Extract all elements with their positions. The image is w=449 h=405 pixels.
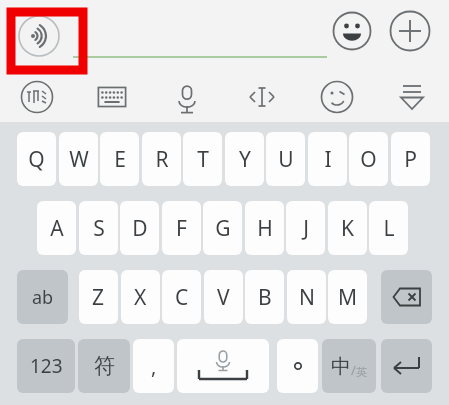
button[interactable]: Enter — [381, 339, 432, 393]
staticText: A — [50, 214, 64, 243]
staticText: 符 — [94, 353, 115, 379]
button[interactable]: Stickers — [299, 72, 374, 122]
button[interactable]: 符 — [78, 339, 130, 393]
button[interactable]: O — [349, 132, 388, 186]
staticText: G — [215, 214, 231, 243]
button[interactable]: C — [162, 270, 201, 324]
staticText: K — [341, 214, 354, 243]
button[interactable]: , — [133, 339, 174, 393]
staticText: C — [175, 283, 189, 312]
staticText: J — [303, 214, 309, 243]
button[interactable]: E — [100, 132, 139, 186]
button[interactable]: Chinese English toggle — [322, 339, 376, 393]
staticText: X — [134, 283, 147, 312]
button[interactable]: Voice — [149, 72, 224, 122]
staticText: F — [176, 214, 187, 243]
staticText: I — [324, 145, 332, 174]
button[interactable]: Emoji — [332, 11, 372, 51]
staticText: H — [257, 214, 273, 243]
staticText: M — [338, 283, 358, 312]
button[interactable]: R — [142, 132, 181, 186]
button[interactable]: Keyboard — [74, 72, 149, 122]
staticText: B — [258, 283, 272, 312]
staticText: P — [404, 145, 417, 174]
staticText: Q — [28, 145, 45, 174]
staticText: L — [383, 214, 395, 243]
staticText: U — [278, 145, 294, 174]
button[interactable]: Period — [277, 339, 318, 393]
button[interactable]: U — [266, 132, 305, 186]
staticText: / — [351, 361, 356, 379]
staticText: Z — [92, 283, 105, 312]
button[interactable]: S — [79, 201, 118, 255]
button[interactable]: T — [183, 132, 222, 186]
button[interactable]: A — [37, 201, 76, 255]
button[interactable]: B — [245, 270, 284, 324]
button[interactable]: J — [286, 201, 325, 255]
button[interactable]: Voice input — [18, 15, 60, 57]
button[interactable]: Y — [225, 132, 264, 186]
staticText: E — [114, 145, 126, 174]
staticText: W — [69, 145, 89, 174]
button[interactable]: Backspace — [381, 270, 432, 324]
staticText: D — [132, 214, 148, 243]
staticText: S — [93, 214, 105, 243]
staticText: T — [197, 145, 209, 174]
staticText: 英 — [356, 365, 367, 379]
staticText: ab — [32, 285, 54, 310]
button[interactable]: H — [245, 201, 284, 255]
staticText: V — [217, 283, 230, 312]
button[interactable]: L — [369, 201, 408, 255]
staticText: O — [360, 145, 377, 174]
button[interactable]: Z — [79, 270, 118, 324]
staticText: Y — [239, 145, 251, 174]
button[interactable]: ab — [17, 270, 68, 324]
staticText: R — [155, 145, 169, 174]
button[interactable]: 123 — [17, 339, 75, 393]
button[interactable]: G — [203, 201, 242, 255]
staticText: , — [151, 353, 157, 380]
button[interactable]: D — [120, 201, 159, 255]
button[interactable]: W — [59, 132, 98, 186]
button[interactable]: V — [204, 270, 243, 324]
staticText: 中 — [331, 354, 351, 379]
button[interactable]: More — [374, 72, 449, 122]
staticText: 123 — [30, 353, 63, 379]
button[interactable]: Move cursor — [224, 72, 299, 122]
button[interactable]: Input method — [0, 72, 74, 122]
staticText: N — [299, 283, 315, 312]
button[interactable]: K — [328, 201, 367, 255]
button[interactable]: X — [121, 270, 160, 324]
button[interactable]: Add — [389, 10, 431, 52]
button[interactable]: F — [162, 201, 201, 255]
button[interactable]: M — [328, 270, 367, 324]
button[interactable]: P — [391, 132, 430, 186]
button[interactable]: Space — [177, 339, 269, 393]
button[interactable]: N — [287, 270, 326, 324]
button[interactable]: Q — [17, 132, 56, 186]
button[interactable]: I — [308, 132, 347, 186]
